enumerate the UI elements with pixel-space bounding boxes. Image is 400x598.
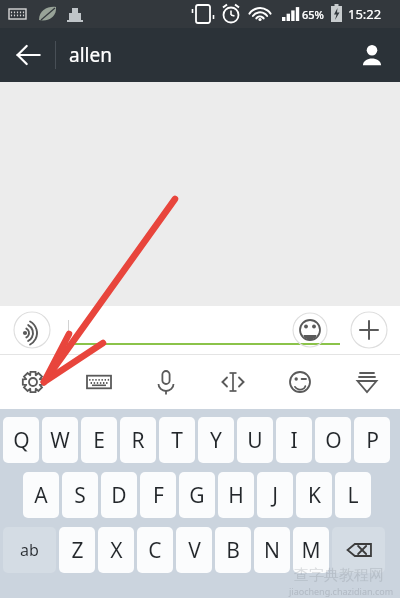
staticText: P (366, 426, 379, 455)
staticText: E (93, 426, 105, 455)
staticText: T (171, 426, 183, 455)
button[interactable]: Hide keyboard (333, 355, 400, 409)
staticText: K (308, 481, 321, 510)
button[interactable]: K (296, 472, 332, 518)
button[interactable]: Q (3, 417, 39, 463)
staticText: W (50, 426, 70, 455)
button[interactable]: Move cursor (199, 355, 266, 409)
staticText: 15:22 (348, 5, 382, 23)
staticText: X (110, 536, 123, 565)
button[interactable]: E (81, 417, 117, 463)
button[interactable]: Emoji (292, 312, 328, 348)
button[interactable]: F (140, 472, 176, 518)
staticText: H (228, 481, 244, 510)
staticText: V (188, 536, 201, 565)
button[interactable]: I (276, 417, 312, 463)
staticText: M (301, 536, 321, 565)
staticText: G (189, 481, 205, 510)
staticText: 查字典教程网 (294, 566, 384, 585)
staticText: Z (71, 536, 84, 565)
button[interactable]: G (179, 472, 215, 518)
staticText: J (272, 481, 278, 510)
button[interactable]: Voice input (132, 355, 199, 409)
staticText: U (247, 426, 263, 455)
button[interactable]: X (98, 527, 134, 573)
button[interactable]: Settings (0, 355, 66, 409)
staticText: A (34, 481, 48, 510)
staticText: 65% (302, 7, 324, 22)
button[interactable]: H (218, 472, 254, 518)
button[interactable]: D (101, 472, 137, 518)
button[interactable]: P (354, 417, 390, 463)
button[interactable]: C (137, 527, 173, 573)
staticText: Y (210, 426, 222, 455)
button[interactable]: Add attachment (350, 311, 388, 349)
button[interactable]: W (42, 417, 78, 463)
staticText: S (74, 481, 86, 510)
staticText: I (290, 426, 298, 455)
staticText: N (264, 536, 280, 565)
button[interactable]: J (257, 472, 293, 518)
button[interactable]: Voice message (13, 311, 51, 349)
button[interactable]: L (335, 472, 371, 518)
button[interactable]: Y (198, 417, 234, 463)
button[interactable]: Backspace (332, 527, 385, 573)
staticText: O (325, 426, 342, 455)
button[interactable]: Stickers (266, 355, 333, 409)
button[interactable]: Back (0, 28, 56, 82)
staticText: C (148, 536, 162, 565)
staticText: R (131, 426, 145, 455)
staticText: D (111, 481, 127, 510)
button[interactable]: Keyboard layout (66, 355, 132, 409)
button[interactable]: T (159, 417, 195, 463)
button[interactable]: A (23, 472, 59, 518)
button[interactable]: U (237, 417, 273, 463)
button[interactable]: O (315, 417, 351, 463)
button[interactable]: M (293, 527, 329, 573)
staticText: L (347, 481, 359, 510)
button[interactable]: N (254, 527, 290, 573)
staticText: Q (13, 426, 30, 455)
staticText: allen (69, 42, 112, 68)
button[interactable]: V (176, 527, 212, 573)
staticText: F (153, 481, 164, 510)
button[interactable]: R (120, 417, 156, 463)
button[interactable]: B (215, 527, 251, 573)
staticText: ab (20, 539, 39, 561)
staticText: B (226, 536, 240, 565)
staticText: jiaocheng.chazidian.com (289, 585, 394, 597)
button[interactable]: ab (3, 527, 56, 573)
button[interactable]: Z (59, 527, 95, 573)
button[interactable]: Contact profile (344, 28, 400, 82)
button[interactable]: S (62, 472, 98, 518)
